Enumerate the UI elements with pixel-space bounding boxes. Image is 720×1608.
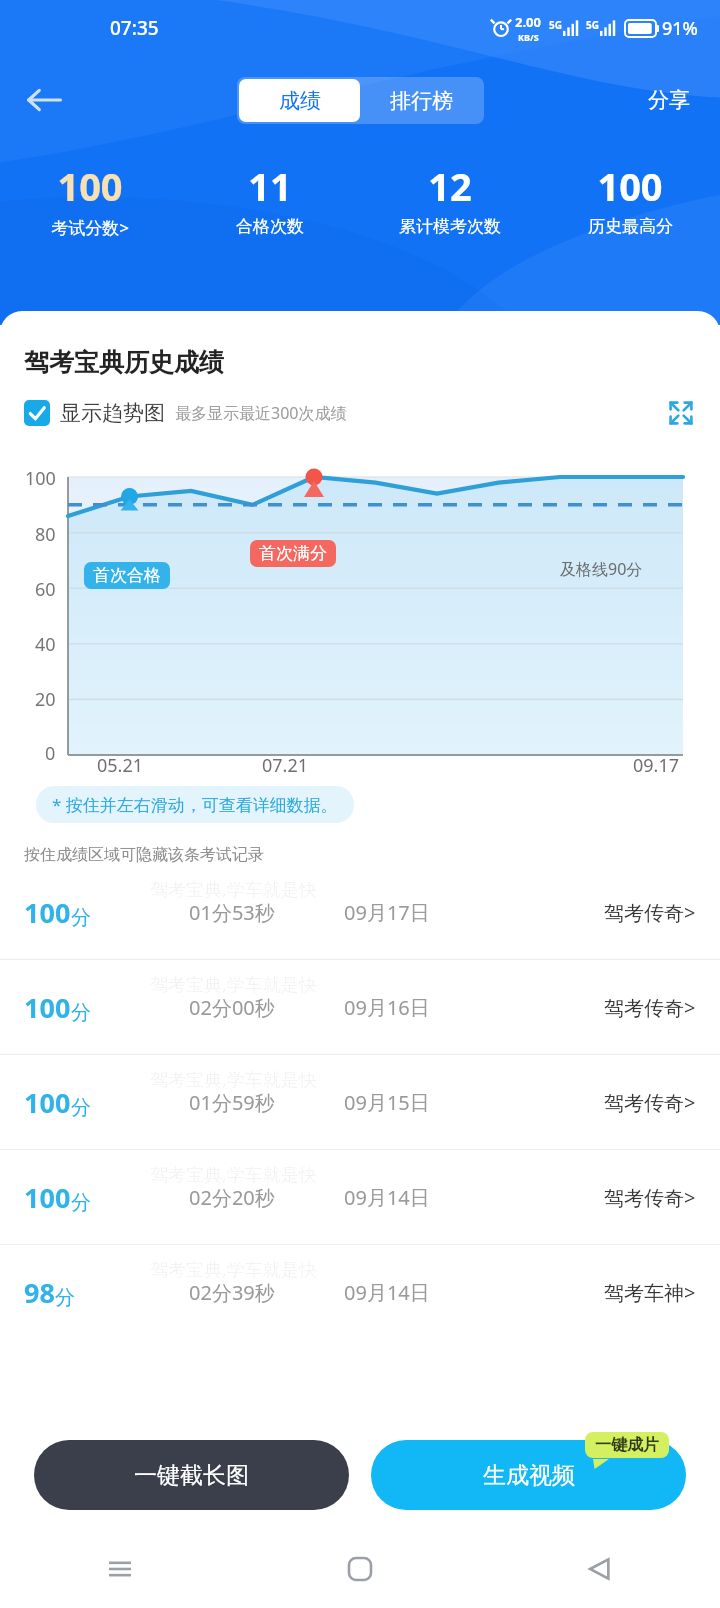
staticText: 80 (35, 522, 56, 547)
button[interactable]: 排行榜 (360, 79, 482, 122)
staticText: 100 (24, 1084, 71, 1121)
staticText: 02分00秒 (189, 994, 275, 1021)
staticText: 100 (24, 894, 71, 931)
staticText: 按住成绩区域可隐藏该条考试记录 (24, 845, 264, 865)
staticText: 分 (55, 1285, 75, 1310)
staticText: 及格线90分 (560, 558, 643, 580)
staticText: 98 (24, 1274, 55, 1311)
staticText: 07:35 (110, 15, 159, 41)
staticText: 历史最高分 (588, 216, 673, 237)
staticText: 最多显示最近300次成绩 (175, 402, 347, 424)
staticText: 分 (71, 1000, 91, 1025)
button[interactable]: 返回 (22, 76, 70, 124)
staticText: 09月14日 (344, 1184, 430, 1211)
staticText: 驾考宝典,学车就是快 (150, 877, 317, 902)
button[interactable]: 显示趋势图 (24, 400, 165, 426)
staticText: 02分20秒 (189, 1184, 275, 1211)
staticText: 分享 (648, 87, 690, 113)
staticText: 100 (597, 160, 663, 212)
staticText: 60 (35, 577, 56, 602)
staticText: 一键截长图 (134, 1461, 249, 1490)
staticText: 驾考传奇> (604, 1184, 696, 1211)
staticText: KB/S (518, 31, 539, 43)
staticText: 07.21 (262, 753, 309, 778)
staticText: 驾考传奇> (604, 1089, 696, 1116)
button[interactable]: 11 (180, 158, 360, 239)
staticText: 分 (71, 1190, 91, 1215)
staticText: 驾考宝典,学车就是快 (150, 972, 317, 997)
button[interactable]: 驾考宝典,学车就是快 (0, 960, 720, 1054)
button[interactable]: 100 (0, 158, 180, 241)
staticText: 05.21 (97, 753, 144, 778)
staticText: 驾考宝典历史成绩 (24, 347, 224, 378)
staticText: 2.00 (515, 13, 541, 31)
staticText: 5G (586, 18, 599, 32)
button[interactable]: 100 (540, 158, 720, 239)
staticText: 累计模考次数 (399, 216, 501, 237)
button[interactable]: 一键截长图 (34, 1440, 349, 1510)
staticText: 首次合格 (93, 565, 161, 586)
staticText: 驾考传奇> (604, 899, 696, 926)
staticText: 显示趋势图 (60, 400, 165, 426)
staticText: 考试分数> (51, 216, 129, 239)
staticText: 40 (35, 632, 56, 657)
staticText: 02分39秒 (189, 1279, 275, 1306)
button[interactable]: 分享 (640, 79, 698, 121)
staticText: 生成视频 (483, 1461, 575, 1490)
staticText: 09.17 (633, 753, 680, 778)
staticText: 驾考车神> (604, 1279, 696, 1306)
staticText: 09月14日 (344, 1279, 430, 1306)
staticText: 01分59秒 (189, 1089, 275, 1116)
staticText: 09月16日 (344, 994, 430, 1021)
staticText: 合格次数 (236, 216, 304, 237)
staticText: 09月15日 (344, 1089, 430, 1116)
button[interactable]: 驾考宝典,学车就是快 (0, 1245, 720, 1339)
button[interactable]: 最近任务 (96, 1545, 144, 1593)
staticText: 0 (45, 741, 56, 766)
button[interactable]: 全屏查看 (664, 396, 698, 430)
staticText: 排行榜 (390, 88, 453, 114)
staticText: 成绩 (279, 88, 321, 114)
button[interactable]: 返回 (576, 1545, 624, 1593)
staticText: 09月17日 (344, 899, 430, 926)
staticText: 驾考传奇> (604, 994, 696, 1021)
staticText: 100 (24, 1179, 71, 1216)
button[interactable]: 生成视频 (371, 1440, 686, 1510)
staticText: 91% (662, 16, 698, 41)
button[interactable]: 12 (360, 158, 540, 239)
staticText: 12 (428, 160, 472, 212)
staticText: 20 (35, 687, 56, 712)
button[interactable]: * 按住并左右滑动，可查看详细数据。 (36, 786, 354, 823)
button[interactable]: 主屏幕 (336, 1545, 384, 1593)
staticText: 一键成片 (595, 1435, 659, 1455)
button[interactable]: 成绩 (239, 79, 360, 122)
staticText: 分 (71, 905, 91, 930)
staticText: 01分53秒 (189, 899, 275, 926)
button[interactable]: 驾考宝典,学车就是快 (0, 1055, 720, 1149)
staticText: 驾考宝典,学车就是快 (150, 1162, 317, 1187)
button[interactable]: 驾考宝典,学车就是快 (0, 865, 720, 959)
staticText: 11 (248, 160, 292, 212)
staticText: 100 (24, 989, 71, 1026)
staticText: 5G (549, 18, 562, 32)
staticText: 100 (57, 160, 123, 212)
staticText: 驾考宝典,学车就是快 (150, 1067, 317, 1092)
staticText: 分 (71, 1095, 91, 1120)
button[interactable]: 驾考宝典,学车就是快 (0, 1150, 720, 1244)
staticText: 驾考宝典,学车就是快 (150, 1257, 317, 1282)
staticText: * 按住并左右滑动，可查看详细数据。 (52, 793, 338, 816)
staticText: 100 (25, 466, 56, 491)
staticText: 首次满分 (259, 543, 327, 564)
